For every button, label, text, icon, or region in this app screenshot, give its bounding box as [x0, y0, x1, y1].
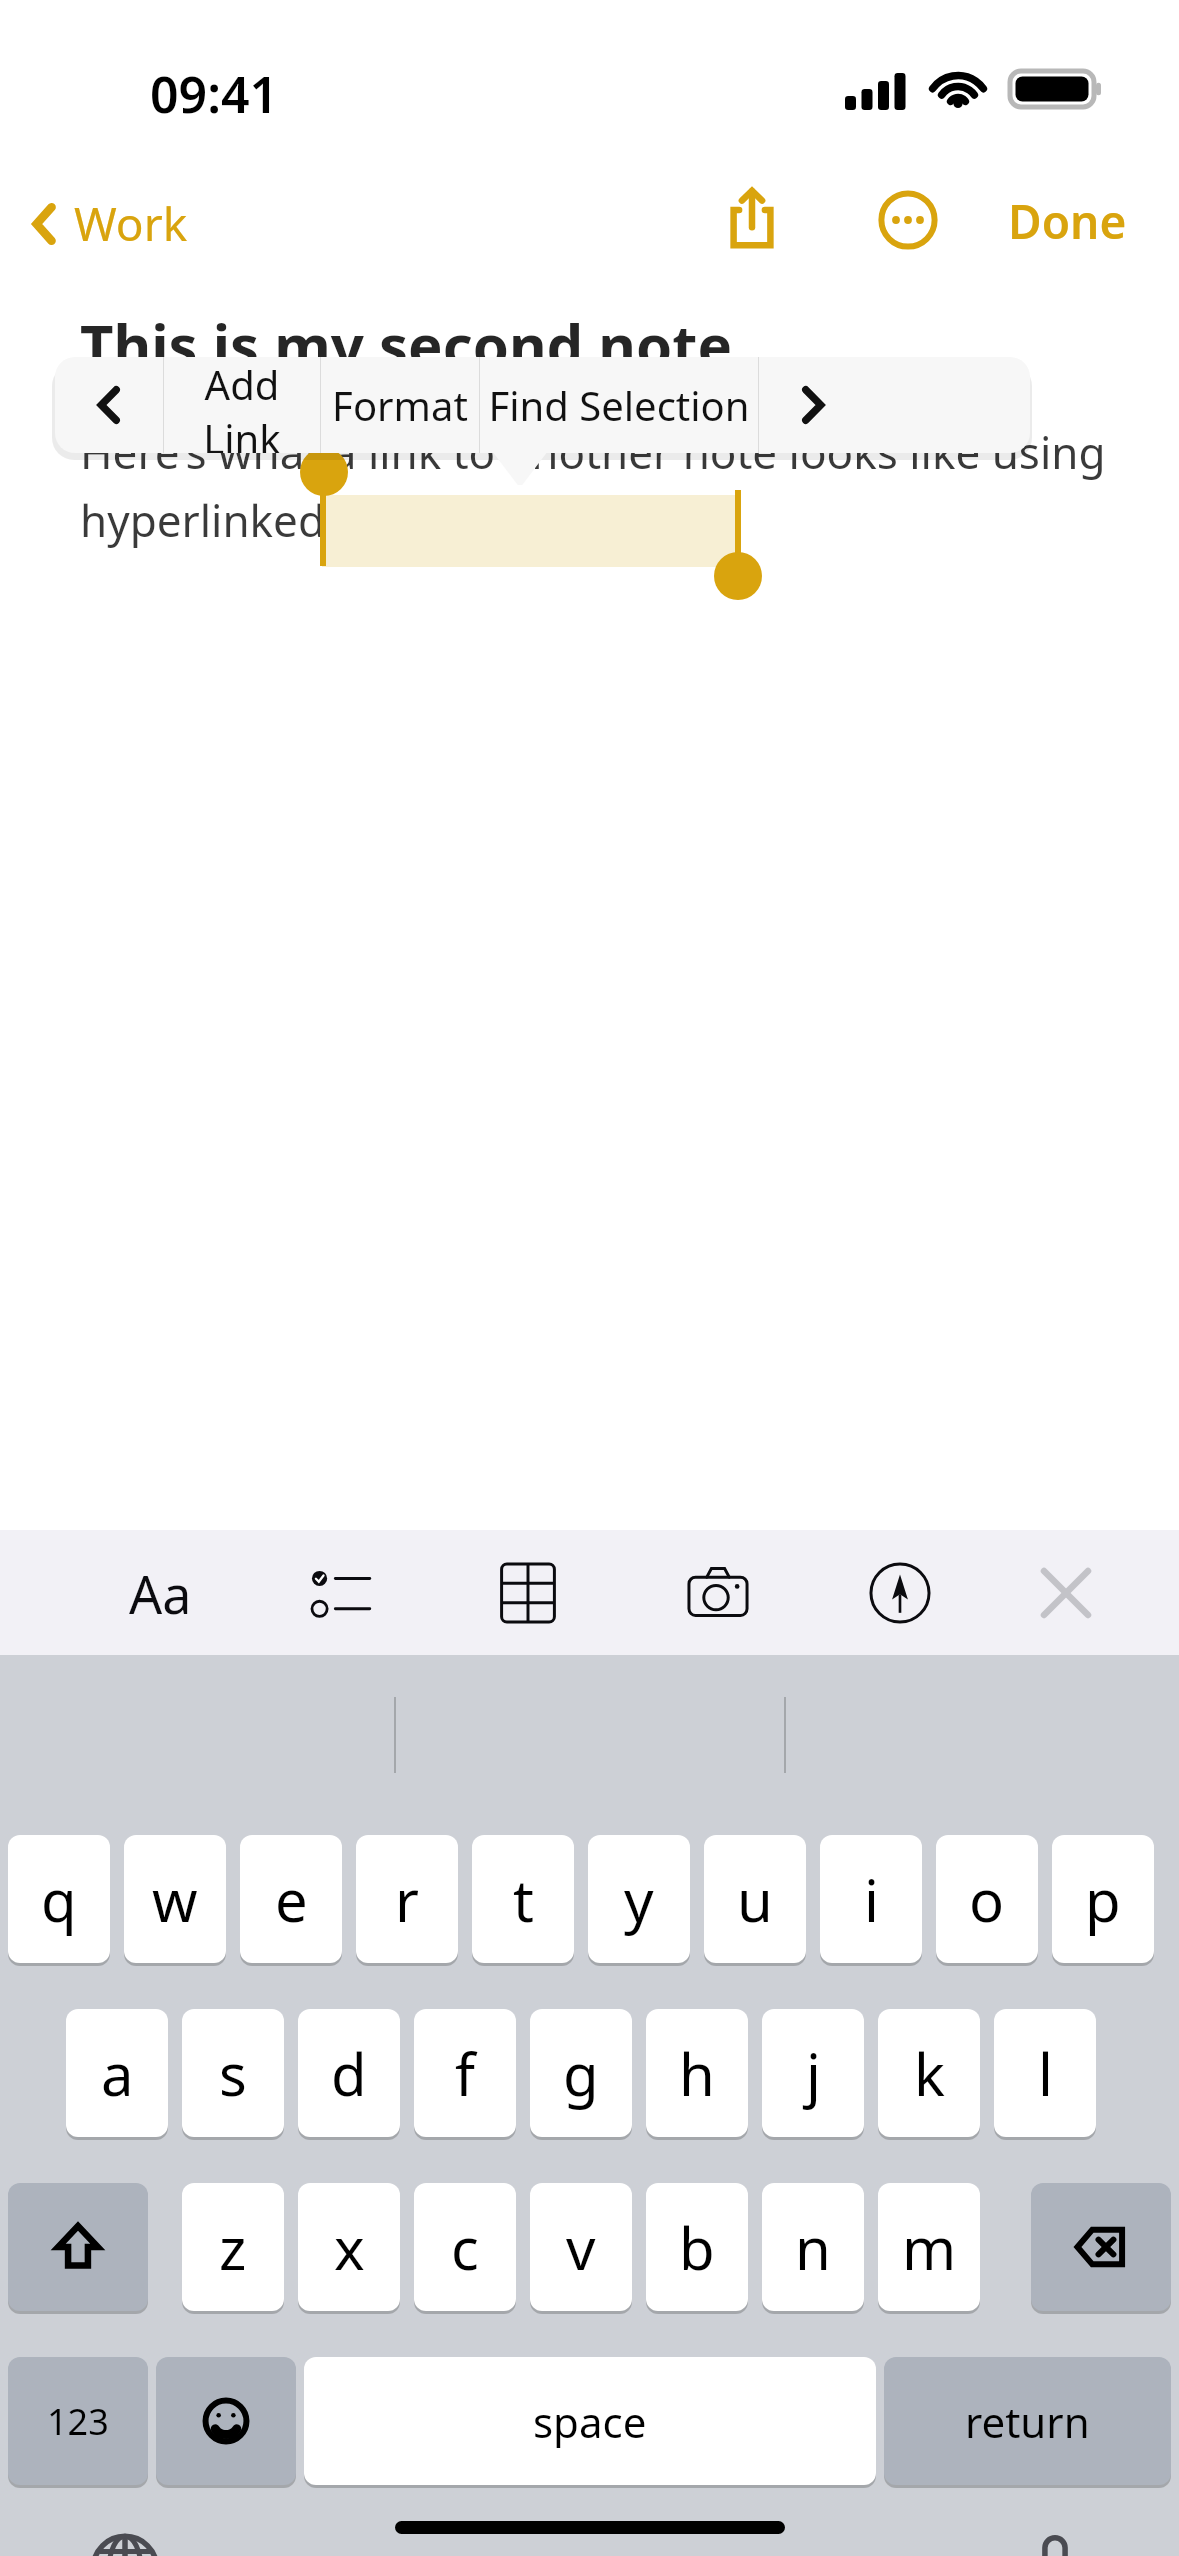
- staticText: 123: [47, 2397, 109, 2446]
- button[interactable]: Share: [712, 178, 792, 258]
- staticText: Done: [1008, 190, 1127, 253]
- staticText: a: [101, 2034, 134, 2113]
- staticText: c: [451, 2208, 479, 2287]
- staticText: h: [679, 2034, 715, 2113]
- button[interactable]: w: [124, 1835, 226, 1963]
- staticText: space: [533, 2393, 647, 2450]
- staticText: m: [902, 2208, 957, 2287]
- button[interactable]: Backspace: [1031, 2183, 1171, 2311]
- button[interactable]: More options: [868, 180, 948, 260]
- button[interactable]: Find Selection: [480, 357, 758, 453]
- staticText: return: [965, 2393, 1090, 2450]
- button[interactable]: Format: [321, 357, 479, 453]
- button[interactable]: q: [8, 1835, 110, 1963]
- button[interactable]: Next: [759, 357, 867, 453]
- button[interactable]: a: [66, 2009, 168, 2137]
- button[interactable]: Dictate: [1000, 2513, 1110, 2556]
- button[interactable]: g: [530, 2009, 632, 2137]
- button[interactable]: l: [994, 2009, 1096, 2137]
- button[interactable]: j: [762, 2009, 864, 2137]
- button[interactable]: Checklist: [287, 1546, 397, 1640]
- button[interactable]: i: [820, 1835, 922, 1963]
- button[interactable]: c: [414, 2183, 516, 2311]
- staticText: Here’s what a link to another note looks…: [80, 422, 1109, 550]
- staticText: y: [624, 1860, 654, 1939]
- staticText: Work: [74, 192, 188, 255]
- button[interactable]: z: [182, 2183, 284, 2311]
- button[interactable]: u: [704, 1835, 806, 1963]
- button[interactable]: Hide keyboard: [1016, 1548, 1116, 1638]
- button[interactable]: Markup: [845, 1546, 955, 1640]
- button[interactable]: x: [298, 2183, 400, 2311]
- button[interactable]: Previous: [55, 357, 163, 453]
- button[interactable]: d: [298, 2009, 400, 2137]
- button[interactable]: Insert table: [473, 1546, 583, 1640]
- button[interactable]: Emoji: [156, 2357, 296, 2485]
- staticText: w: [152, 1860, 198, 1939]
- button[interactable]: p: [1052, 1835, 1154, 1963]
- button[interactable]: Take photo: [663, 1546, 773, 1640]
- staticText: j: [806, 2034, 821, 2113]
- staticText: o: [969, 1860, 1005, 1939]
- staticText: n: [795, 2208, 831, 2287]
- staticText: f: [455, 2034, 475, 2113]
- button[interactable]: space: [304, 2357, 876, 2485]
- staticText: s: [219, 2034, 247, 2113]
- staticText: e: [275, 1860, 308, 1939]
- staticText: d: [331, 2034, 367, 2113]
- button[interactable]: o: [936, 1835, 1038, 1963]
- button[interactable]: Text format: [105, 1546, 215, 1640]
- staticText: v: [566, 2208, 596, 2287]
- staticText: i: [864, 1860, 879, 1939]
- staticText: 09:41: [150, 60, 279, 128]
- button[interactable]: v: [530, 2183, 632, 2311]
- button[interactable]: b: [646, 2183, 748, 2311]
- button[interactable]: Change keyboard: [70, 2513, 180, 2556]
- staticText: Find Selection: [488, 378, 750, 432]
- button[interactable]: k: [878, 2009, 980, 2137]
- button[interactable]: t: [472, 1835, 574, 1963]
- button[interactable]: return: [884, 2357, 1171, 2485]
- button[interactable]: f: [414, 2009, 516, 2137]
- staticText: q: [41, 1860, 77, 1939]
- staticText: Format: [332, 378, 468, 432]
- button[interactable]: m: [878, 2183, 980, 2311]
- staticText: g: [563, 2034, 599, 2113]
- staticText: This is my second note: [80, 305, 733, 384]
- button[interactable]: Add Link: [164, 357, 320, 453]
- staticText: l: [1038, 2034, 1053, 2113]
- staticText: u: [737, 1860, 773, 1939]
- staticText: Aa: [129, 1558, 192, 1629]
- staticText: r: [395, 1860, 419, 1939]
- button[interactable]: Done: [1000, 184, 1135, 259]
- staticText: p: [1085, 1860, 1121, 1939]
- staticText: b: [679, 2208, 715, 2287]
- button[interactable]: y: [588, 1835, 690, 1963]
- staticText: x: [334, 2208, 365, 2287]
- button[interactable]: Shift: [8, 2183, 148, 2311]
- button[interactable]: h: [646, 2009, 748, 2137]
- staticText: t: [513, 1860, 534, 1939]
- button[interactable]: r: [356, 1835, 458, 1963]
- staticText: z: [219, 2208, 247, 2287]
- button[interactable]: 123: [8, 2357, 148, 2485]
- button[interactable]: e: [240, 1835, 342, 1963]
- staticText: k: [914, 2034, 945, 2113]
- button[interactable]: n: [762, 2183, 864, 2311]
- staticText: Add Link: [164, 357, 320, 453]
- button[interactable]: s: [182, 2009, 284, 2137]
- button[interactable]: Work: [24, 186, 194, 261]
